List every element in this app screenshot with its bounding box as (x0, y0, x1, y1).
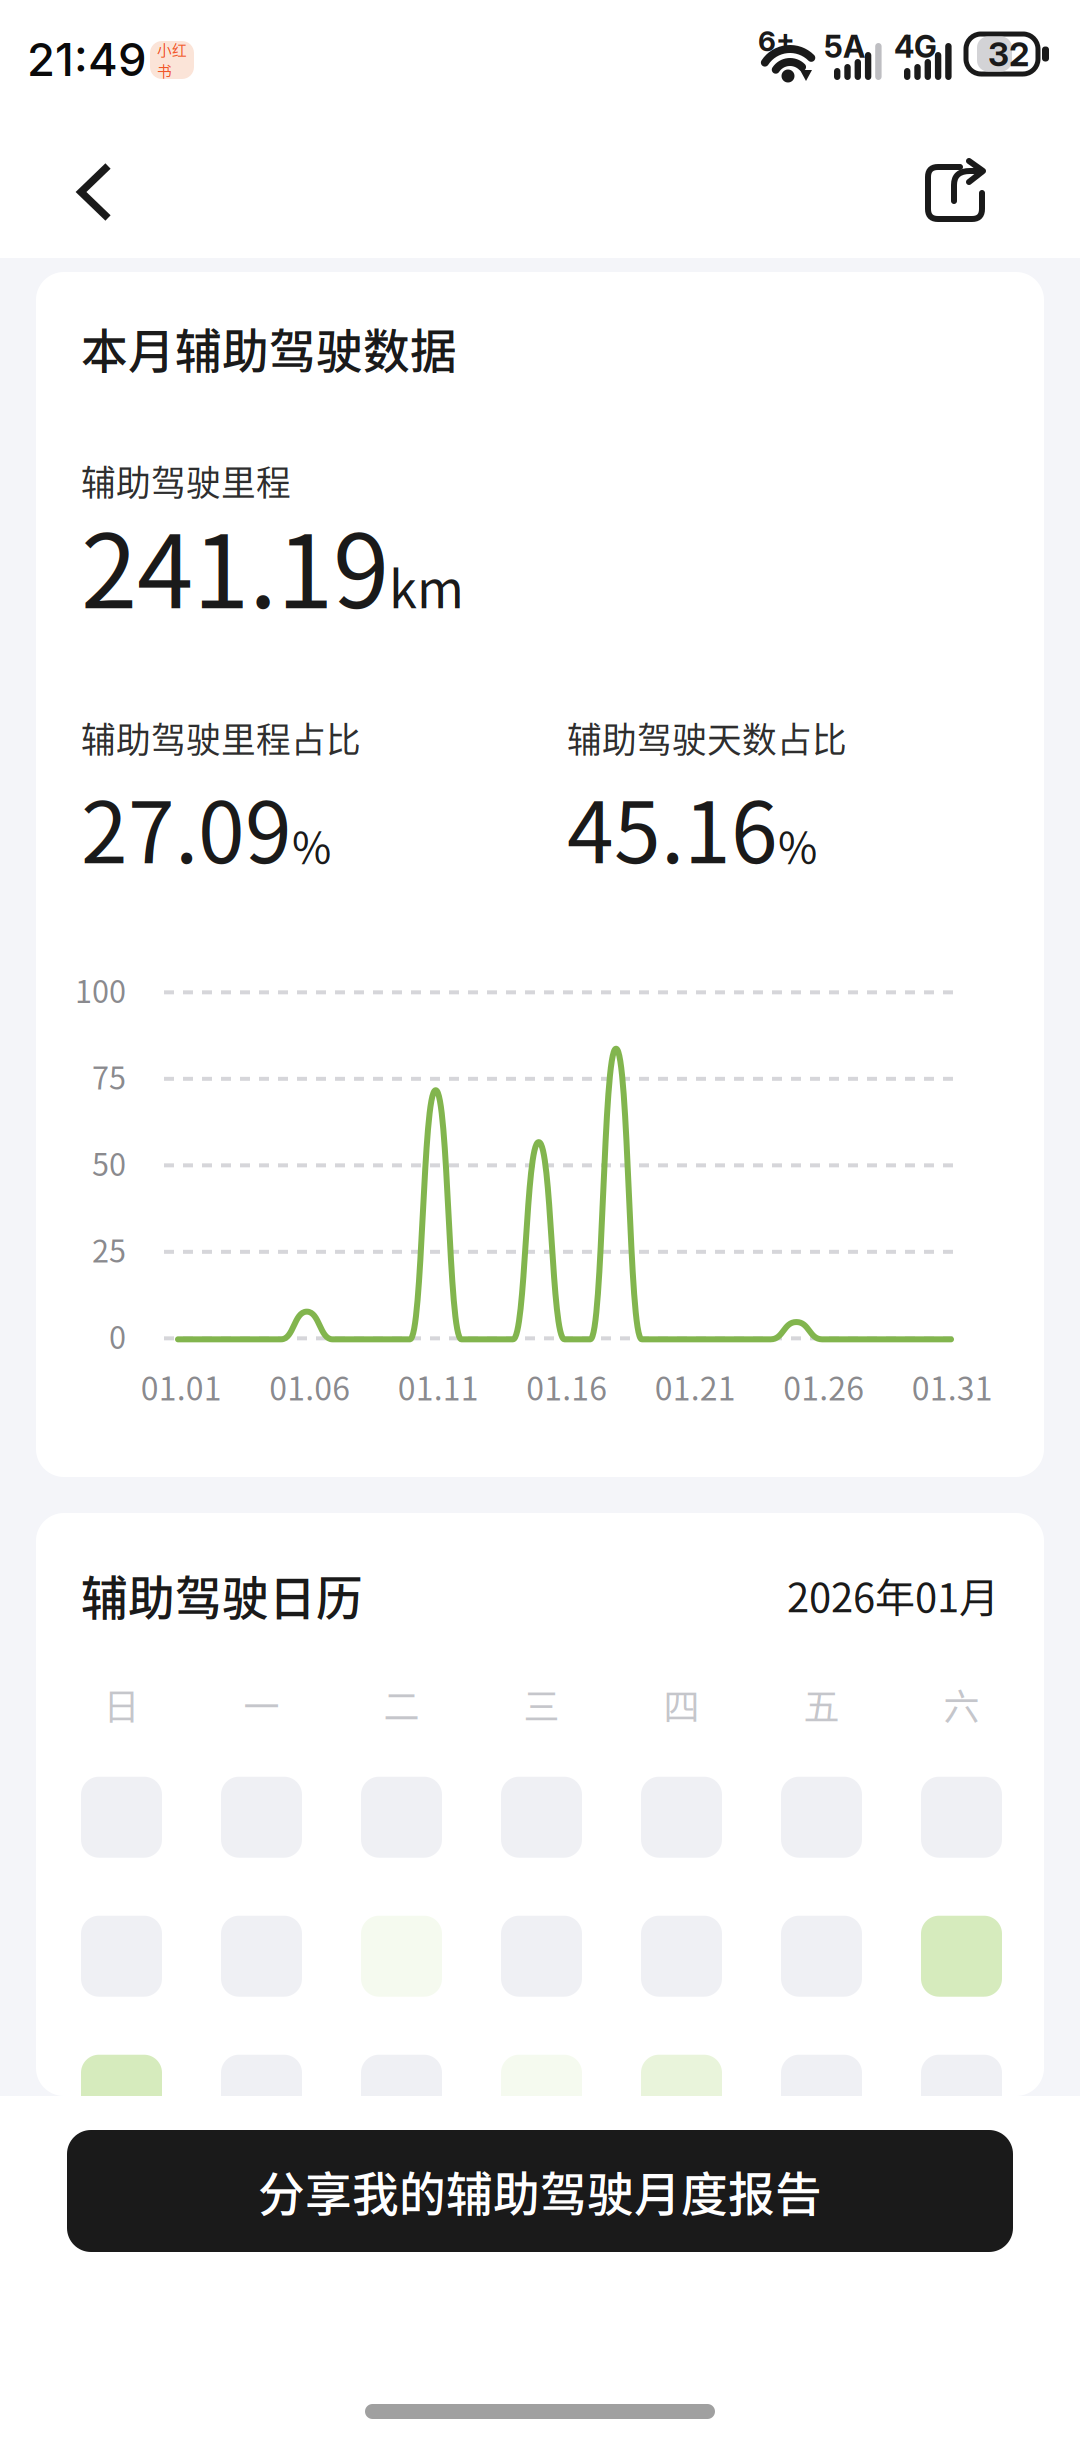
staticText: 01.01 (141, 1363, 222, 1410)
staticText: km (389, 549, 464, 623)
staticText: 本月辅助驾驶数据 (81, 314, 457, 382)
staticText: 50 (92, 1140, 126, 1185)
staticText: 6+ (758, 24, 795, 58)
staticText: 2026年01月 (787, 1566, 999, 1624)
staticText: 二 (383, 1679, 419, 1731)
staticText: 三 (523, 1679, 559, 1731)
staticText: 六 (943, 1679, 979, 1731)
staticText: 45.16 (567, 766, 778, 887)
staticText: 4G (894, 28, 937, 65)
staticText: % (778, 814, 817, 875)
staticText: 21:49 (27, 32, 147, 87)
staticText: 辅助驾驶里程 (81, 456, 291, 506)
staticText: 01.16 (526, 1363, 607, 1410)
staticText: 100 (75, 967, 126, 1012)
staticText: 小红书 (157, 39, 187, 81)
staticText: 32 (988, 34, 1029, 74)
staticText: 辅助驾驶日历 (81, 1561, 363, 1629)
staticText: 01.11 (398, 1363, 479, 1410)
button[interactable]: Back (0, 129, 137, 245)
staticText: 01.21 (655, 1363, 736, 1410)
staticText: 01.06 (269, 1363, 350, 1410)
button[interactable]: 分享我的辅助驾驶月度报告 (67, 2130, 1013, 2252)
staticText: 01.31 (912, 1363, 993, 1410)
staticText: 25 (92, 1227, 126, 1271)
staticText: 四 (663, 1679, 699, 1731)
staticText: 五 (803, 1679, 839, 1731)
staticText: 分享我的辅助驾驶月度报告 (258, 2157, 822, 2225)
button[interactable]: Share (900, 129, 1080, 245)
staticText: 辅助驾驶天数占比 (567, 712, 847, 763)
staticText: 27.09 (81, 766, 292, 887)
staticText: 241.19 (81, 491, 389, 637)
staticText: % (292, 814, 331, 875)
staticText: 辅助驾驶里程占比 (81, 712, 361, 763)
staticText: 01.26 (783, 1363, 864, 1410)
staticText: 75 (92, 1054, 126, 1098)
staticText: 日 (103, 1679, 139, 1731)
staticText: 0 (109, 1313, 126, 1358)
staticText: 5A (824, 28, 865, 65)
staticText: 一 (243, 1679, 279, 1731)
